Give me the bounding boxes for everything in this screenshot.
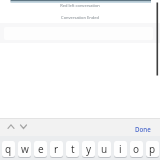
- button[interactable]: p: [146, 141, 159, 158]
- staticText: Done: [135, 125, 151, 133]
- staticText: i: [119, 142, 122, 156]
- button[interactable]: e: [34, 141, 47, 158]
- staticText: Red left conversation: [0, 3, 160, 8]
- button[interactable]: Done: [135, 125, 151, 133]
- staticText: o: [133, 142, 140, 156]
- button[interactable]: w: [18, 141, 31, 158]
- button[interactable]: r: [50, 141, 63, 158]
- staticText: w: [21, 142, 29, 156]
- button[interactable]: [19, 122, 29, 130]
- staticText: q: [5, 142, 12, 156]
- button[interactable]: i: [114, 141, 127, 158]
- staticText: t: [71, 142, 75, 156]
- button[interactable]: y: [82, 141, 95, 158]
- staticText: p: [149, 142, 156, 156]
- button[interactable]: q: [2, 141, 15, 158]
- button[interactable]: o: [130, 141, 143, 158]
- staticText: y: [86, 142, 92, 156]
- staticText: u: [101, 142, 108, 156]
- staticText: r: [54, 142, 59, 156]
- staticText: Conversation Ended: [0, 15, 160, 20]
- button[interactable]: u: [98, 141, 111, 158]
- button[interactable]: t: [66, 141, 79, 158]
- button[interactable]: [6, 122, 16, 130]
- staticText: e: [38, 142, 44, 156]
